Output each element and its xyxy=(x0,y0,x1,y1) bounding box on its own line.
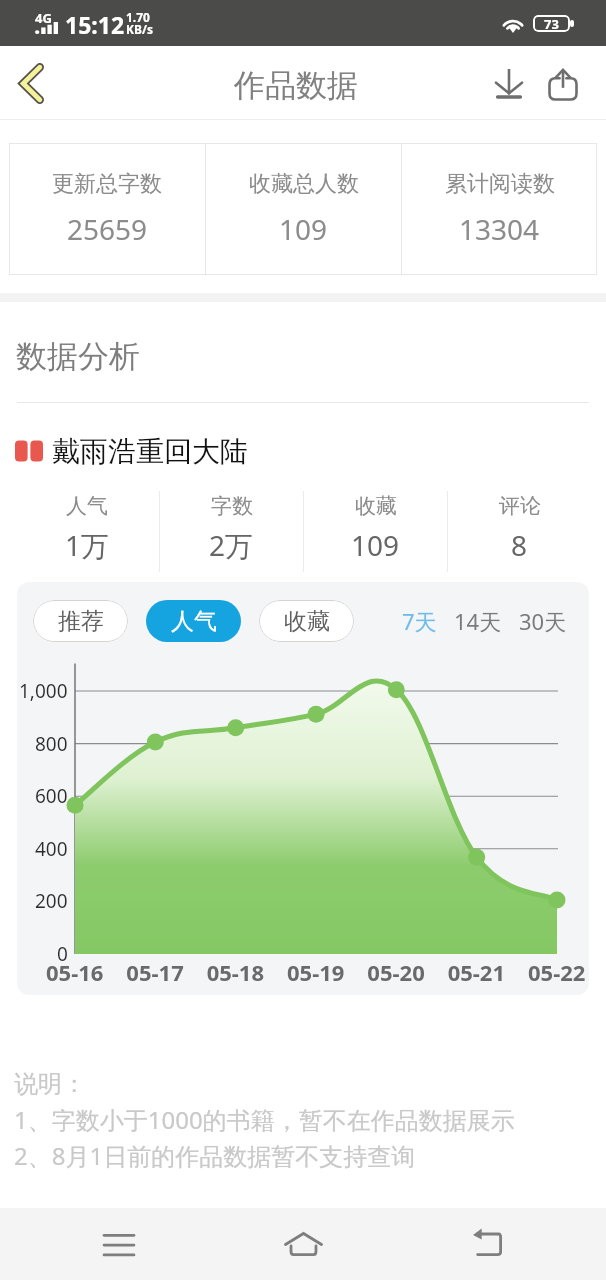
staticText: 收藏 xyxy=(284,607,330,636)
staticText: 字数 xyxy=(211,493,253,519)
staticText: 2、8月1日前的作品数据暂不支持查询 xyxy=(14,1139,416,1172)
staticText: 人气 xyxy=(66,493,108,519)
button[interactable]: 戴雨浩重回大陆 xyxy=(0,403,606,481)
staticText: 15:12 xyxy=(65,9,125,40)
button[interactable]: 字数 xyxy=(160,481,303,582)
button[interactable]: 累计阅读数 xyxy=(402,143,597,275)
button[interactable]: Back xyxy=(446,1208,528,1280)
staticText: 1.70 xyxy=(126,9,150,25)
staticText: 109 xyxy=(351,526,400,564)
staticText: KB/s xyxy=(126,21,153,37)
staticText: 25659 xyxy=(67,210,148,248)
staticText: 说明： xyxy=(14,1069,86,1099)
staticText: 戴雨浩重回大陆 xyxy=(52,434,248,469)
button[interactable]: Menu xyxy=(78,1208,160,1280)
button[interactable]: 评论 xyxy=(448,481,591,582)
staticText: 2万 xyxy=(209,526,254,564)
staticText: 推荐 xyxy=(58,607,104,636)
button[interactable]: 推荐 xyxy=(33,600,128,642)
button[interactable]: Home xyxy=(262,1208,344,1280)
staticText: 14天 xyxy=(454,606,502,636)
staticText: 4G xyxy=(35,9,52,27)
staticText: 评论 xyxy=(499,493,541,519)
button[interactable]: 人气 xyxy=(146,600,241,642)
staticText: 7天 xyxy=(402,606,437,636)
button[interactable]: Download xyxy=(481,56,536,111)
staticText: 累计阅读数 xyxy=(445,170,555,198)
staticText: 13304 xyxy=(459,210,540,248)
button[interactable]: 更新总字数 xyxy=(9,143,205,275)
staticText: 8 xyxy=(511,526,528,564)
button[interactable]: 人气 xyxy=(15,481,159,582)
staticText: 109 xyxy=(279,210,328,248)
staticText: 1万 xyxy=(65,526,110,564)
button[interactable]: 收藏 xyxy=(259,600,354,642)
staticText: 收藏 xyxy=(355,493,397,519)
button[interactable]: Back xyxy=(2,50,60,116)
staticText: 更新总字数 xyxy=(52,170,162,198)
staticText: 73 xyxy=(544,15,559,32)
staticText: 作品数据 xyxy=(234,66,358,105)
button[interactable]: 收藏 xyxy=(304,481,447,582)
staticText: 收藏总人数 xyxy=(249,170,359,198)
button[interactable]: Share xyxy=(535,56,590,111)
staticText: 数据分析 xyxy=(16,337,140,376)
staticText: 30天 xyxy=(519,606,567,636)
button[interactable]: 收藏总人数 xyxy=(206,143,401,275)
staticText: 人气 xyxy=(171,607,217,636)
staticText: 1、字数小于1000的书籍，暂不在作品数据展示 xyxy=(14,1103,515,1136)
